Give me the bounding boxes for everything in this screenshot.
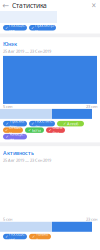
button[interactable]: Back <box>0 0 12 11</box>
staticText: ✓ <box>32 234 35 239</box>
staticText: 23 сен <box>86 217 97 222</box>
staticText: ✓ <box>5 121 8 126</box>
button[interactable]: ✓ <box>3 127 23 133</box>
staticText: Посетители <box>35 118 53 129</box>
staticText: Посещения <box>9 22 25 33</box>
staticText: ✓ <box>5 234 8 239</box>
button[interactable]: ✓ <box>3 121 27 126</box>
button[interactable]: ✓ <box>25 127 44 133</box>
staticText: 25 Авг 2019 — 23 Сен 2019 <box>3 157 51 163</box>
staticText: Конверсии <box>9 131 24 142</box>
staticText: Посещения <box>9 231 25 242</box>
staticText: Юнэк <box>3 40 17 48</box>
staticText: 5 сен <box>3 217 12 222</box>
staticText: ✓ <box>63 121 66 126</box>
button[interactable]: ✓ <box>3 134 27 139</box>
staticText: ✓ <box>5 134 8 139</box>
staticText: ✓ <box>31 25 34 30</box>
staticText: ✓ <box>5 25 8 30</box>
button[interactable]: Close <box>88 0 100 11</box>
staticText: Активность <box>3 149 34 156</box>
staticText: 25 Авг 2019 — 23 Сен 2019 <box>3 49 51 54</box>
button[interactable]: ✓ <box>29 121 55 126</box>
staticText: Боты <box>32 127 41 133</box>
staticText: Ошибки <box>52 125 62 135</box>
staticText: 23 сен <box>86 104 97 109</box>
staticText: Просмотры <box>9 118 24 129</box>
button[interactable]: ✓ <box>57 121 84 126</box>
button[interactable]: ✓ <box>29 25 56 30</box>
staticText: Анноб <box>67 121 78 126</box>
button[interactable]: ✓ <box>46 127 65 133</box>
staticText: × <box>91 0 96 11</box>
staticText: ✓ <box>48 128 51 132</box>
button[interactable]: ✓ <box>29 234 51 239</box>
button[interactable]: ✓ <box>3 25 27 30</box>
staticText: ✓ <box>28 128 31 132</box>
staticText: 5 сен <box>3 104 12 109</box>
staticText: ✓ <box>31 121 34 126</box>
staticText: Только я <box>36 231 48 242</box>
staticText: ✓ <box>5 128 8 132</box>
staticText: ← <box>2 1 9 10</box>
staticText: Отказы <box>9 125 21 135</box>
staticText: Просмотры <box>35 22 54 33</box>
staticText: Статистика <box>12 1 47 10</box>
button[interactable]: ✓ <box>3 234 27 239</box>
